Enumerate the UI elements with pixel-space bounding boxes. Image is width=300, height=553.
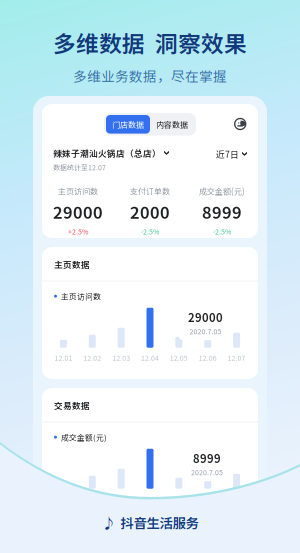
staticText: 12.01 xyxy=(54,353,72,363)
staticText: +2.5% xyxy=(68,226,88,236)
staticText: 12.02 xyxy=(83,353,101,363)
staticText: 2020.7.05 xyxy=(189,326,221,336)
staticText: 12.03 xyxy=(112,494,130,504)
button[interactable]: 内容数据 xyxy=(150,115,194,133)
staticText: 主页访问数 xyxy=(58,185,98,197)
staticText: -2.5% xyxy=(141,226,159,236)
staticText: 12.06 xyxy=(199,353,217,363)
staticText: 主页访问数 xyxy=(61,290,101,302)
staticText: 近7日 xyxy=(216,148,239,160)
staticText: 12.05 xyxy=(170,494,188,504)
staticText: 辣妹子潮汕火锅店（总店） xyxy=(53,147,161,159)
staticText: 主页数据 xyxy=(54,258,90,270)
staticText: 数据统计至12.07 xyxy=(53,162,106,172)
staticText: 多维业务数据，尽在掌握 xyxy=(73,66,227,85)
staticText: 2000 xyxy=(130,200,170,223)
staticText: 12.05 xyxy=(170,353,188,363)
staticText: 交易数据 xyxy=(54,399,90,411)
staticText: 29000 xyxy=(53,200,103,223)
staticText: 多维数据 洞察效果 xyxy=(53,26,247,59)
staticText: 门店数据 xyxy=(112,118,144,130)
staticText: 支付订单数 xyxy=(130,185,170,197)
staticText: 抖音生活服务 xyxy=(120,513,198,532)
staticText: 12.03 xyxy=(112,353,130,363)
button[interactable]: 客服 xyxy=(234,118,247,131)
staticText: 8999 xyxy=(193,450,221,466)
staticText: 12.07 xyxy=(228,353,246,363)
staticText: 12.04 xyxy=(141,353,159,363)
staticText: 29000 xyxy=(188,309,223,325)
staticText: 成交金额(元) xyxy=(61,431,107,443)
staticText: 8999 xyxy=(202,200,242,223)
staticText: 2020.7.05 xyxy=(191,467,223,477)
staticText: 成交金额(元) xyxy=(199,185,245,197)
staticText: 12.04 xyxy=(141,494,159,504)
staticText: -2.5% xyxy=(213,226,231,236)
staticText: 12.06 xyxy=(199,494,217,504)
button[interactable]: 门店数据 xyxy=(106,115,150,134)
staticText: ♪ xyxy=(101,512,116,533)
staticText: 内容数据 xyxy=(156,118,188,130)
